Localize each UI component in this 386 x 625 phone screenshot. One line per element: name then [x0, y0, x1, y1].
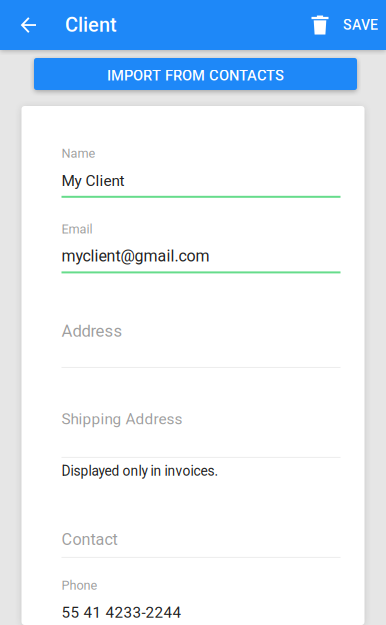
- staticText: Name: [61, 146, 95, 161]
- staticText: My Client: [61, 172, 124, 190]
- button[interactable]: SAVE: [343, 0, 386, 50]
- staticText: myclient@gmail.com: [61, 247, 209, 265]
- staticText: IMPORT FROM CONTACTS: [107, 67, 284, 84]
- staticText: Contact: [61, 530, 117, 549]
- button[interactable]: Delete: [297, 0, 343, 50]
- button[interactable]: IMPORT FROM CONTACTS: [34, 58, 357, 90]
- staticText: SAVE: [343, 17, 378, 33]
- button[interactable]: Client: [52, 0, 117, 50]
- staticText: Displayed only in invoices.: [61, 463, 218, 479]
- staticText: 55 41 4233-2244: [61, 604, 181, 622]
- staticText: Shipping Address: [61, 410, 182, 428]
- staticText: Address: [61, 321, 122, 341]
- staticText: Email: [61, 222, 92, 237]
- staticText: Phone: [61, 578, 97, 593]
- staticText: Client: [65, 13, 117, 37]
- button[interactable]: Back: [0, 0, 52, 50]
